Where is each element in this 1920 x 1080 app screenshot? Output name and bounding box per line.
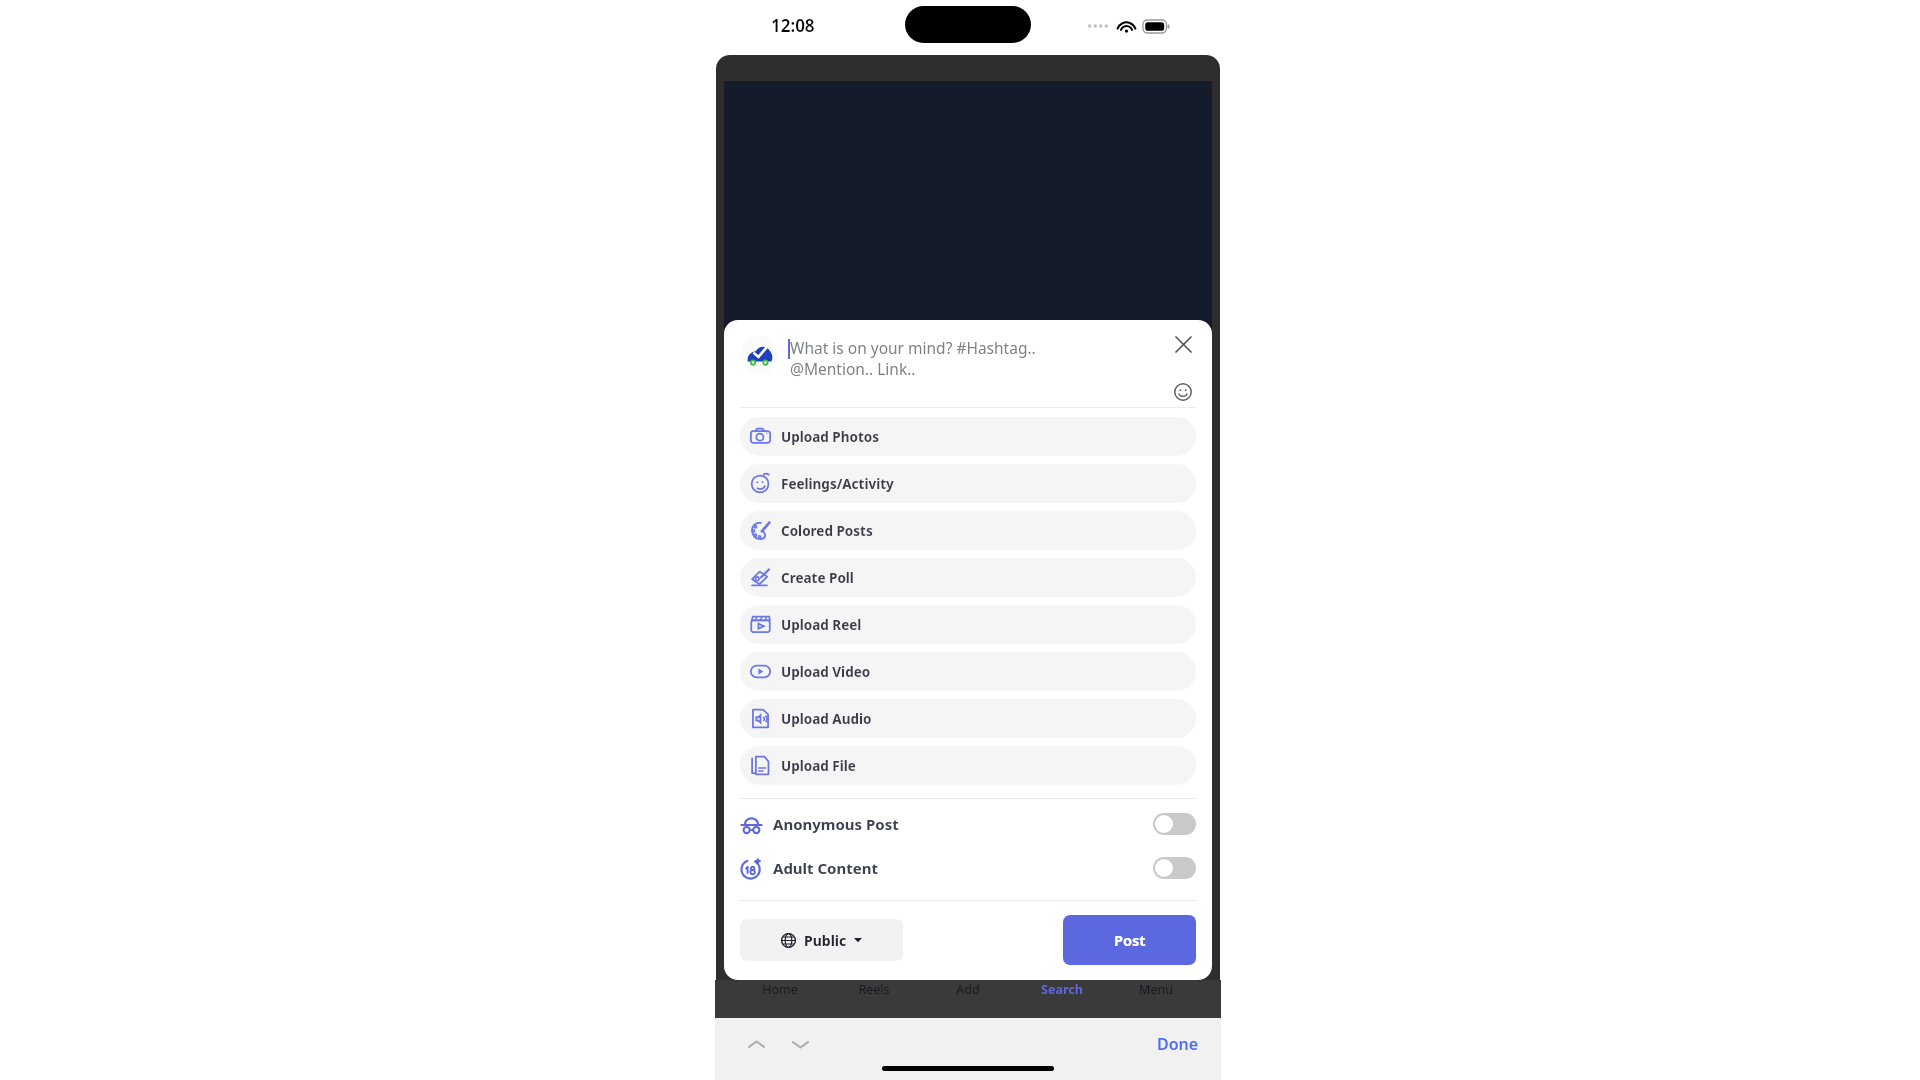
button[interactable]: Anonymous Post toggle [1153,813,1196,835]
button[interactable]: Upload Reel [740,605,1196,644]
button[interactable]: Adult Content [740,852,1196,884]
button[interactable]: Menu [1109,980,1203,1018]
button[interactable]: Profile avatar [740,336,778,374]
staticText: Public [804,931,847,950]
button[interactable]: Upload Video [740,652,1196,691]
staticText: Upload File [781,757,856,775]
button[interactable]: What is on your mind? #Hashtag.. @Mentio… [788,337,1170,380]
button[interactable]: Adult Content toggle [1153,857,1196,879]
staticText: Post [1114,930,1146,950]
staticText: Create Poll [781,569,854,587]
staticText: Colored Posts [781,522,873,540]
button[interactable]: Add [921,980,1015,1018]
staticText: Upload Photos [781,428,879,446]
staticText: Search [1041,981,1083,998]
staticText: Upload Video [781,663,871,681]
staticText: Done [1157,1033,1199,1055]
staticText: Add [956,981,980,998]
button[interactable]: Post [1063,915,1196,965]
button[interactable]: Feelings/Activity [740,464,1196,503]
button[interactable]: Upload Photos [740,417,1196,456]
button[interactable]: Emoji [1170,379,1196,405]
staticText: Upload Reel [781,616,862,634]
staticText: Adult Content [773,858,1153,878]
button[interactable]: Search [1015,980,1109,1018]
button[interactable]: Next field [785,1029,815,1059]
staticText: Menu [1139,981,1173,998]
staticText: Home [762,981,798,998]
button[interactable]: Create Poll [740,558,1196,597]
button[interactable]: Home [733,980,827,1018]
button[interactable]: Previous field [741,1029,771,1059]
staticText: Upload Audio [781,710,872,728]
staticText: Anonymous Post [773,814,1153,834]
button[interactable]: Close [1170,331,1196,357]
button[interactable]: Anonymous Post [740,808,1196,840]
button[interactable]: Colored Posts [740,511,1196,550]
button[interactable]: Upload File [740,746,1196,785]
button[interactable]: Done [1157,1033,1199,1055]
staticText: Feelings/Activity [781,475,894,493]
button[interactable]: Reels [827,980,921,1018]
button[interactable]: Upload Audio [740,699,1196,738]
staticText: What is on your mind? #Hashtag.. @Mentio… [790,337,1036,380]
staticText: 12:08 [771,14,815,37]
button[interactable]: Public [740,919,903,961]
staticText: Reels [858,981,890,998]
